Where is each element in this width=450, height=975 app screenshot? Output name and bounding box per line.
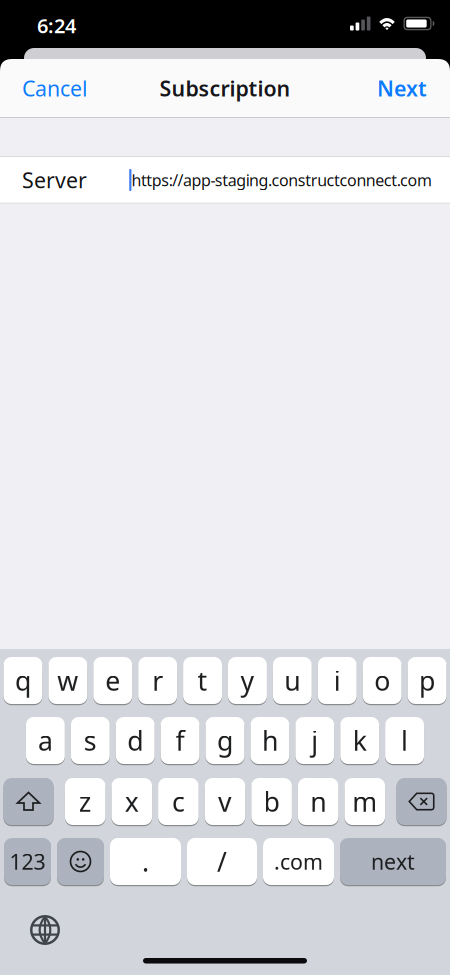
button[interactable]: i [318,657,357,704]
button[interactable]: y [228,657,267,704]
staticText: m [352,784,377,819]
staticText: l [401,723,408,758]
staticText: next [371,847,415,876]
button[interactable]: Next keyboard [30,915,60,945]
button[interactable]: w [48,657,87,704]
staticText: 123 [9,847,45,876]
button[interactable]: Delete [396,778,446,825]
staticText: / [217,844,227,879]
staticText: s [84,723,97,758]
button[interactable]: k [340,717,379,764]
button[interactable]: m [344,778,385,825]
staticText: r [152,663,163,698]
staticText: a [38,723,53,758]
button[interactable]: o [363,657,402,704]
button[interactable]: / [187,838,257,885]
button[interactable]: r [138,657,177,704]
staticText: f [176,723,185,758]
button[interactable]: Next [377,74,450,102]
button[interactable]: p [408,657,446,704]
button[interactable]: j [295,717,334,764]
button[interactable]: l [385,717,424,764]
button[interactable]: s [71,717,110,764]
staticText: i [334,663,341,698]
staticText: .com [274,847,323,876]
staticText: c [172,784,185,819]
staticText: h [262,723,278,758]
staticText: . [142,844,149,879]
button[interactable]: b [251,778,292,825]
staticText: Next [377,74,427,102]
button[interactable]: Next [340,838,446,885]
staticText: Server [22,166,87,194]
button[interactable]: x [111,778,152,825]
staticText: o [374,663,390,698]
button[interactable]: . [110,838,181,885]
button[interactable]: Cancel [0,74,88,102]
staticText: g [217,723,233,758]
button[interactable]: h [250,717,289,764]
button[interactable]: c [158,778,199,825]
staticText: n [310,784,326,819]
button[interactable]: u [273,657,312,704]
staticText: x [125,784,139,819]
button[interactable]: Shift [3,778,53,825]
staticText: 6:24 [37,12,76,39]
staticText: t [198,663,208,698]
button[interactable]: Server [0,157,450,203]
button[interactable]: .com [263,838,334,885]
button[interactable]: g [206,717,244,764]
button[interactable]: d [116,717,155,764]
staticText: p [419,663,435,698]
staticText: u [284,663,300,698]
button[interactable]: n [298,778,338,825]
button[interactable]: Emoji [57,838,104,885]
button[interactable]: z [65,778,105,825]
staticText: Cancel [22,74,88,102]
staticText: y [240,663,254,698]
staticText: z [79,784,92,819]
staticText: j [311,723,318,758]
button[interactable]: f [161,717,200,764]
staticText: k [353,723,367,758]
staticText: e [105,663,120,698]
button[interactable]: v [205,778,245,825]
button[interactable]: a [26,717,65,764]
button[interactable]: e [93,657,132,704]
staticText: b [264,784,280,819]
staticText: q [15,663,31,698]
button[interactable]: q [3,657,42,704]
staticText: Subscription [159,74,290,102]
staticText: https://app-staging.constructconnect.com [131,169,432,191]
button[interactable]: t [183,657,222,704]
staticText: w [57,663,78,698]
button[interactable]: Numbers [4,838,51,885]
staticText: v [218,784,232,819]
staticText: d [127,723,143,758]
